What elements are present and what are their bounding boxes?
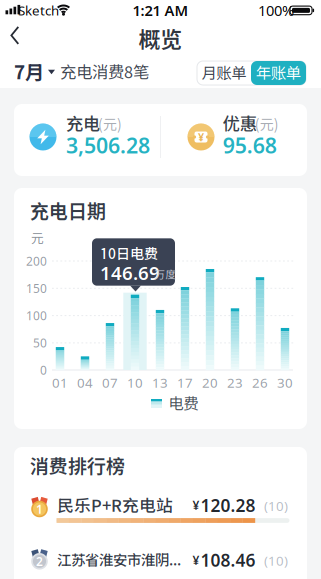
- button[interactable]: 2: [0, 0, 321, 579]
- staticText: 消费排行榜: [30, 455, 125, 477]
- staticText: 146.69: [100, 260, 160, 285]
- staticText: 元: [31, 231, 44, 246]
- staticText: 充电: [66, 114, 100, 134]
- staticText: 04: [77, 374, 93, 391]
- staticText: ¥: [193, 497, 200, 513]
- button[interactable]: 年账单: [251, 61, 306, 85]
- staticText: 50: [33, 335, 47, 351]
- staticText: 10日电费: [100, 245, 158, 262]
- staticText: 13: [152, 374, 168, 391]
- staticText: 年账单: [256, 64, 301, 82]
- staticText: 200: [26, 253, 47, 269]
- staticText: 月账单: [201, 64, 246, 82]
- staticText: 30: [277, 374, 293, 391]
- staticText: ¥: [193, 552, 200, 568]
- staticText: 120.28: [201, 494, 256, 517]
- staticText: 优惠: [223, 114, 257, 134]
- staticText: 0: [40, 362, 47, 378]
- staticText: 民乐P+R充电站: [57, 496, 173, 515]
- staticText: 150: [26, 280, 47, 296]
- staticText: (10): [264, 497, 288, 515]
- staticText: (10): [264, 552, 288, 569]
- button[interactable]: 月账单: [197, 61, 251, 85]
- staticText: 2: [36, 553, 43, 569]
- staticText: 20: [202, 374, 218, 391]
- staticText: 17: [177, 374, 193, 391]
- staticText: 7月: [14, 61, 44, 83]
- button[interactable]: 1: [0, 0, 321, 579]
- staticText: (元): [255, 116, 279, 133]
- staticText: 95.68: [223, 131, 277, 159]
- button[interactable]: 7月: [14, 61, 55, 83]
- staticText: 电费: [168, 394, 198, 413]
- staticText: 108.46: [201, 548, 256, 571]
- staticText: 100%: [258, 1, 294, 20]
- staticText: 万度: [154, 268, 176, 281]
- staticText: 23: [227, 374, 243, 391]
- staticText: 1:21 AM: [132, 1, 188, 20]
- staticText: 1: [36, 501, 43, 517]
- staticText: 充电消费8笔: [60, 62, 149, 82]
- staticText: 26: [252, 374, 268, 391]
- button[interactable]: Back: [5, 26, 29, 46]
- staticText: 01: [52, 374, 68, 391]
- staticText: ¥: [198, 130, 204, 144]
- staticText: 江苏省淮安市淮阴...: [57, 551, 181, 568]
- staticText: 100: [26, 308, 47, 323]
- staticText: Sketch: [18, 1, 59, 19]
- staticText: (元): [98, 116, 122, 133]
- staticText: 3,506.28: [66, 131, 150, 159]
- staticText: 07: [102, 374, 118, 391]
- staticText: 充电日期: [30, 200, 106, 222]
- staticText: 10: [127, 374, 143, 391]
- staticText: 概览: [138, 26, 182, 52]
